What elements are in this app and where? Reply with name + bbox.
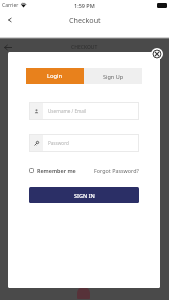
staticText: Login <box>47 72 63 80</box>
staticText: 1:59 PM <box>74 2 95 9</box>
button[interactable]: SIGN IN <box>29 187 139 203</box>
button[interactable]: Login <box>26 68 84 84</box>
button[interactable]: Sign Up <box>84 68 142 84</box>
staticText: SIGN IN <box>74 192 95 199</box>
button[interactable]: Forgot Password? <box>94 167 139 174</box>
button[interactable]: Username / Email <box>29 102 139 120</box>
staticText: Password <box>48 140 69 146</box>
staticText: Remember me <box>37 167 76 174</box>
button[interactable]: Close <box>151 48 163 60</box>
staticText: Username / Email <box>48 108 87 114</box>
button[interactable]: Remember me <box>29 167 76 174</box>
staticText: CHECKOUT <box>71 44 98 51</box>
button[interactable]: Back <box>0 12 20 28</box>
staticText: Carrier <box>2 2 19 9</box>
staticText: Checkout <box>69 15 101 25</box>
staticText: Sign Up <box>103 73 124 80</box>
button[interactable]: Password <box>29 134 139 152</box>
